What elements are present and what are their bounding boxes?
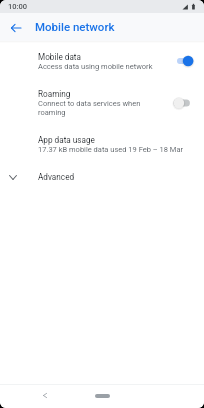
button[interactable]: Off xyxy=(173,96,194,110)
button[interactable]: Home xyxy=(89,390,115,402)
staticText: Advanced xyxy=(38,172,75,182)
button[interactable]: Roaming xyxy=(0,74,204,120)
staticText: 17.37 kB mobile data used 19 Feb – 18 Ma… xyxy=(38,145,184,154)
staticText: Connect to data services when roaming xyxy=(38,99,161,117)
button[interactable]: Advanced xyxy=(0,157,204,192)
button[interactable]: Mobile data xyxy=(0,43,204,74)
button[interactable]: Back xyxy=(36,387,53,404)
staticText: Mobile network xyxy=(35,20,115,33)
staticText: Mobile data xyxy=(38,52,81,62)
button[interactable]: Navigate up xyxy=(4,16,28,40)
button[interactable]: App data usage xyxy=(0,120,204,157)
staticText: App data usage xyxy=(38,135,95,145)
button[interactable]: On xyxy=(173,54,194,68)
staticText: 10:00 xyxy=(8,2,28,11)
staticText: Access data using mobile network xyxy=(38,62,153,71)
staticText: Roaming xyxy=(38,89,71,99)
